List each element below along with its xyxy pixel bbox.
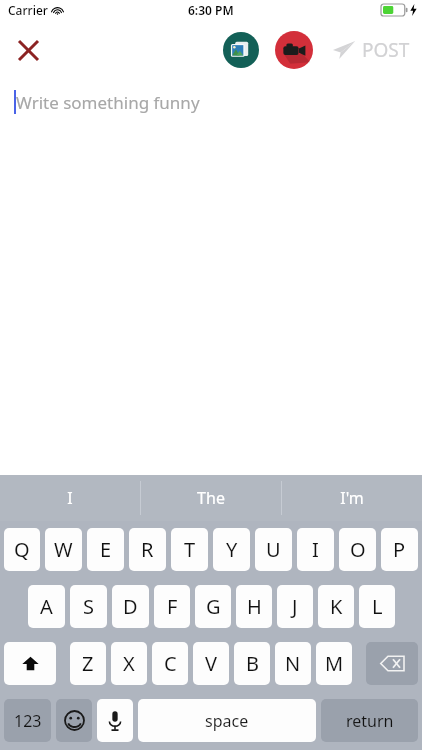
button[interactable]: M	[316, 642, 352, 685]
staticText: 6:30 PM	[188, 2, 234, 18]
button[interactable]: O	[339, 528, 376, 571]
staticText: I	[312, 536, 319, 563]
staticText: S	[83, 593, 94, 620]
button[interactable]: D	[112, 585, 149, 628]
staticText: A	[40, 593, 53, 620]
staticText: J	[292, 593, 298, 620]
button[interactable]: Close	[6, 28, 50, 72]
button[interactable]: W	[45, 528, 82, 571]
staticText: Q	[14, 536, 30, 563]
staticText: D	[123, 593, 138, 620]
button[interactable]: X	[111, 642, 147, 685]
staticText: Z	[82, 650, 94, 677]
staticText: E	[100, 536, 112, 563]
button[interactable]: return	[321, 699, 418, 742]
button[interactable]: U	[255, 528, 292, 571]
staticText: K	[330, 593, 343, 620]
button[interactable]: P	[381, 528, 418, 571]
staticText: W	[54, 536, 73, 563]
button[interactable]: I	[297, 528, 334, 571]
staticText: 123	[14, 710, 42, 732]
button[interactable]: A	[28, 585, 65, 628]
staticText: R	[141, 536, 154, 563]
staticText: P	[393, 536, 406, 563]
button[interactable]: Y	[213, 528, 250, 571]
staticText: I'm	[340, 487, 364, 509]
staticText: T	[184, 536, 196, 563]
button[interactable]: K	[318, 585, 354, 628]
button[interactable]: J	[277, 585, 313, 628]
button[interactable]: V	[193, 642, 229, 685]
staticText: Carrier	[8, 2, 48, 18]
staticText: Write something funny	[16, 91, 200, 114]
staticText: space	[205, 710, 249, 732]
staticText: F	[167, 593, 178, 620]
staticText: POST	[362, 37, 410, 63]
button[interactable]: T	[171, 528, 208, 571]
button[interactable]: L	[359, 585, 395, 628]
staticText: B	[246, 650, 259, 677]
button[interactable]: I	[0, 475, 140, 521]
button[interactable]: Dictation	[97, 699, 133, 742]
staticText: L	[372, 593, 383, 620]
staticText: The	[197, 487, 225, 509]
staticText: C	[164, 650, 177, 677]
button[interactable]: 123	[4, 699, 51, 742]
button[interactable]: G	[195, 585, 231, 628]
button[interactable]: C	[152, 642, 188, 685]
button[interactable]: Add photo	[221, 30, 261, 70]
button[interactable]: space	[138, 699, 316, 742]
button[interactable]: F	[154, 585, 190, 628]
staticText: O	[350, 536, 366, 563]
staticText: M	[325, 650, 344, 677]
button[interactable]: Emoji	[56, 699, 92, 742]
staticText: X	[123, 650, 135, 677]
staticText: G	[206, 593, 221, 620]
staticText: N	[285, 650, 301, 677]
button[interactable]: Z	[70, 642, 106, 685]
button[interactable]: H	[236, 585, 272, 628]
button[interactable]: R	[129, 528, 166, 571]
button[interactable]: N	[275, 642, 311, 685]
staticText: Y	[226, 536, 238, 563]
staticText: U	[266, 536, 281, 563]
button[interactable]: Backspace	[366, 642, 418, 685]
button[interactable]: E	[87, 528, 124, 571]
staticText: return	[346, 710, 394, 732]
button[interactable]: B	[234, 642, 270, 685]
staticText: I	[67, 487, 73, 509]
button[interactable]: The	[141, 475, 281, 521]
button[interactable]: Record video	[274, 30, 314, 70]
button[interactable]: POST	[328, 31, 414, 69]
button[interactable]: Q	[4, 528, 40, 571]
button[interactable]: S	[70, 585, 107, 628]
staticText: V	[205, 650, 217, 677]
button[interactable]: I'm	[282, 475, 422, 521]
staticText: H	[247, 593, 262, 620]
button[interactable]: Shift	[4, 642, 56, 685]
